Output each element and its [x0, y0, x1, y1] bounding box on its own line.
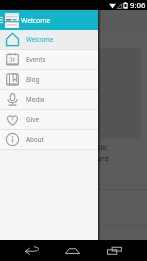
- button[interactable]: Give: [0, 110, 98, 129]
- button[interactable]: Blog: [0, 70, 98, 89]
- staticText: About: [26, 135, 44, 144]
- button[interactable]: About: [0, 130, 98, 149]
- staticText: Welcome: [21, 16, 51, 25]
- button[interactable]: Welcome: [0, 30, 98, 49]
- staticText: Events: [26, 55, 46, 64]
- staticText: Billboard: [79, 154, 109, 164]
- staticText: Give: [26, 115, 39, 124]
- staticText: Media: [26, 95, 45, 104]
- staticText: Pastor Nic: [74, 143, 108, 153]
- button[interactable]: Back: [22, 240, 42, 261]
- button[interactable]: Open navigation drawer: [0, 10, 5, 30]
- button[interactable]: Home: [62, 240, 82, 261]
- staticText: 9:06: [130, 0, 146, 10]
- staticText: Welcome: [26, 35, 54, 44]
- button[interactable]: Recent apps: [104, 240, 124, 261]
- button[interactable]: Events: [0, 50, 98, 69]
- staticText: Blog: [26, 75, 40, 84]
- button[interactable]: Media: [0, 90, 98, 109]
